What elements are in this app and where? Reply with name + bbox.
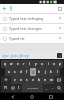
button[interactable]: . — [49, 84, 55, 92]
button[interactable]: Typed text changes — [0, 24, 64, 33]
button[interactable]: Search — [55, 84, 63, 92]
staticText: Typed txt — [9, 36, 25, 41]
button[interactable]: c — [24, 76, 30, 84]
button[interactable]: u — [39, 60, 45, 68]
button[interactable]: Back — [0, 4, 9, 13]
staticText: s — [14, 70, 16, 74]
button[interactable]: Home — [26, 93, 38, 100]
button[interactable]: q — [1, 60, 8, 68]
staticText: n — [44, 78, 46, 82]
button[interactable]: Typed text ch4nging — [0, 14, 64, 23]
staticText: v — [32, 78, 34, 82]
button[interactable]: z — [11, 76, 18, 84]
button[interactable]: Emoji — [10, 84, 16, 92]
staticText: k — [50, 70, 52, 74]
button[interactable]: Shift — [1, 76, 11, 84]
button[interactable]: Space — [22, 84, 43, 92]
staticText: d — [20, 70, 22, 74]
button[interactable]: i — [45, 60, 51, 68]
button[interactable]: Delete — [54, 76, 63, 84]
staticText: x — [20, 78, 22, 82]
button[interactable]: m — [48, 76, 54, 84]
button[interactable]: length — [21, 52, 30, 59]
button[interactable]: a — [5, 68, 12, 76]
button[interactable]: d — [18, 68, 24, 76]
button[interactable]: t — [27, 60, 33, 68]
staticText: g — [32, 70, 34, 74]
button[interactable] — [9, 4, 55, 13]
button[interactable]: ?1 — [1, 84, 10, 92]
button[interactable]: Insert suggestion — [56, 14, 64, 23]
staticText: typed — [2, 53, 11, 58]
staticText: a — [8, 70, 10, 74]
staticText: h — [38, 70, 40, 74]
button[interactable]: e — [15, 60, 21, 68]
staticText: u — [41, 62, 43, 66]
button[interactable]: Insert suggestion — [56, 34, 64, 43]
staticText: Typed text ch4nging — [9, 16, 44, 21]
button[interactable]: Recents — [45, 93, 57, 100]
staticText: c — [26, 78, 28, 82]
button[interactable]: x — [18, 76, 24, 84]
staticText: o — [53, 62, 55, 66]
button[interactable]: h — [36, 68, 42, 76]
staticText: length — [21, 53, 30, 58]
staticText: p — [59, 62, 61, 66]
staticText: j — [45, 70, 46, 74]
staticText: / — [18, 86, 20, 90]
staticText: i — [48, 62, 49, 66]
button[interactable]: o — [51, 60, 57, 68]
button[interactable]: Back — [7, 93, 19, 100]
button[interactable]: s — [12, 68, 18, 76]
button[interactable]: k — [48, 68, 54, 76]
button[interactable]: Insert suggestion — [56, 24, 64, 33]
button[interactable]: l — [54, 68, 60, 76]
button[interactable]: n — [42, 76, 48, 84]
button[interactable]: w — [8, 60, 15, 68]
button[interactable]: f — [24, 68, 30, 76]
button[interactable]: / — [16, 84, 22, 92]
staticText: w — [10, 62, 13, 66]
staticText: y — [35, 62, 37, 66]
button[interactable]: b — [36, 76, 42, 84]
button[interactable]: Typed txt — [0, 34, 64, 43]
button[interactable]: y — [33, 60, 39, 68]
button[interactable]: , — [43, 84, 49, 92]
button[interactable]: Voice search — [55, 4, 64, 13]
button[interactable]: typed — [2, 52, 11, 59]
staticText: m — [50, 78, 53, 82]
staticText: b — [38, 78, 40, 82]
staticText: r — [23, 62, 25, 66]
staticText: t — [29, 62, 31, 66]
button[interactable]: v — [30, 76, 36, 84]
button[interactable]: r — [21, 60, 27, 68]
staticText: Typed text changes — [9, 26, 42, 31]
staticText: z — [14, 78, 16, 82]
staticText: l — [57, 70, 58, 74]
button[interactable]: p — [57, 60, 63, 68]
button[interactable]: j — [42, 68, 48, 76]
staticText: , — [46, 86, 47, 90]
staticText: f — [26, 70, 28, 74]
button[interactable]: Expand suggestions — [57, 53, 62, 58]
button[interactable]: value — [12, 52, 20, 59]
staticText: q — [4, 62, 6, 66]
staticText: e — [17, 62, 19, 66]
staticText: ?1 — [4, 86, 8, 90]
staticText: . — [52, 86, 53, 90]
staticText: value — [12, 53, 20, 58]
button[interactable]: g — [30, 68, 36, 76]
